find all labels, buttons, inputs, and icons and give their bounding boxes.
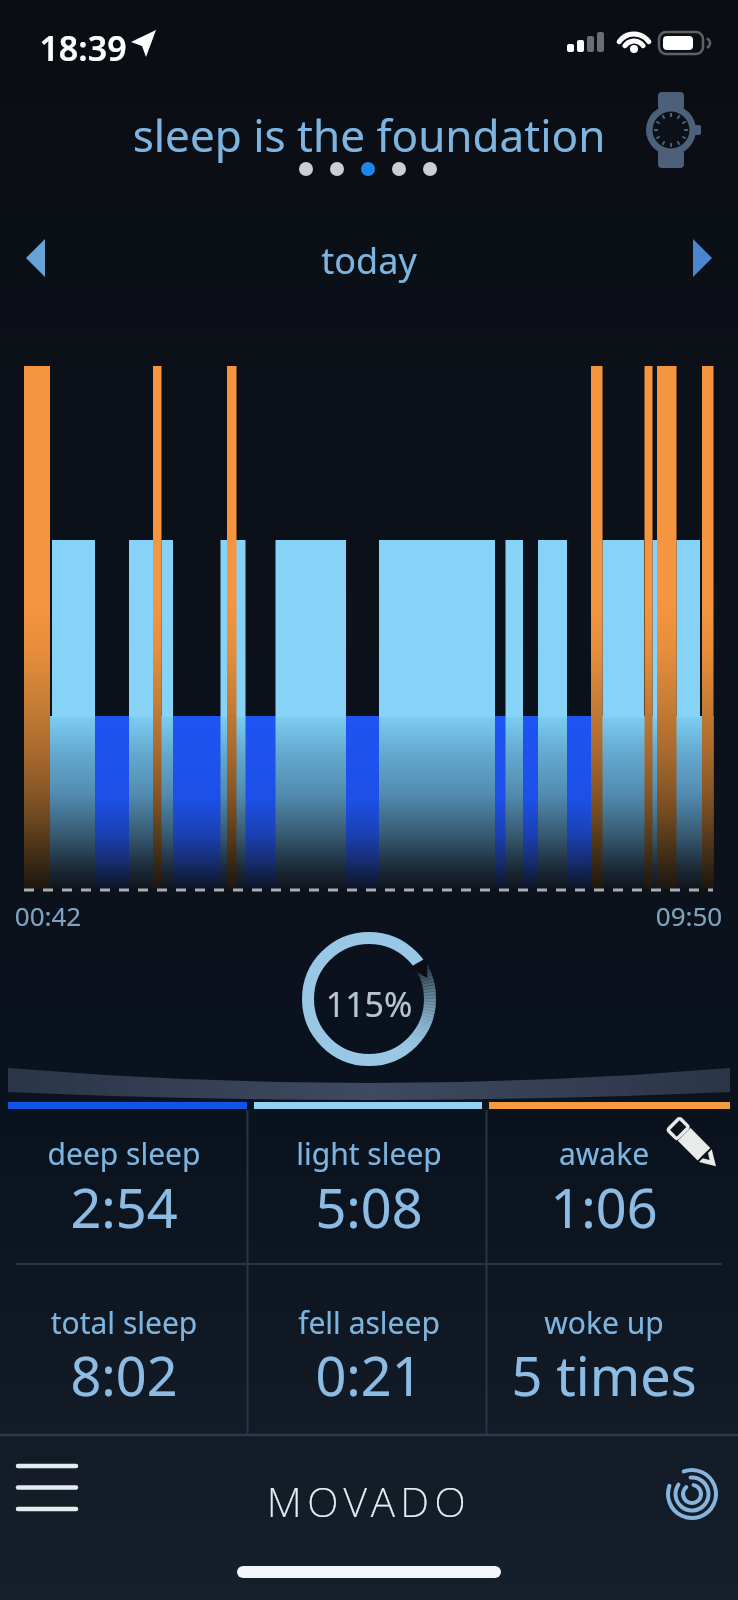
staticText: 5 times xyxy=(494,1338,714,1412)
staticText: 09:50 xyxy=(634,898,738,933)
button[interactable] xyxy=(678,230,728,286)
staticText: 5:08 xyxy=(259,1170,479,1244)
staticText: 18:39 xyxy=(28,25,138,71)
staticText: 2:54 xyxy=(14,1170,234,1244)
staticText: 8:02 xyxy=(14,1338,234,1412)
button[interactable] xyxy=(655,1112,721,1178)
button[interactable] xyxy=(636,95,706,167)
staticText: sleep is the foundation xyxy=(70,105,668,165)
staticText: total sleep xyxy=(14,1302,234,1343)
staticText: 00:42 xyxy=(0,898,103,933)
button[interactable] xyxy=(10,1450,86,1526)
button[interactable]: MOVADO xyxy=(239,1473,499,1529)
staticText: 115% xyxy=(309,981,429,1027)
button[interactable]: deep sleep xyxy=(14,1133,234,1174)
button[interactable]: light sleep xyxy=(259,1133,479,1174)
button[interactable] xyxy=(10,230,62,286)
button[interactable]: awake xyxy=(494,1133,714,1174)
staticText: woke up xyxy=(494,1302,714,1343)
staticText: fell asleep xyxy=(259,1302,479,1343)
button[interactable] xyxy=(660,1460,726,1526)
button[interactable]: today xyxy=(269,236,469,285)
staticText: 1:06 xyxy=(494,1170,714,1244)
staticText: 0:21 xyxy=(259,1338,479,1412)
